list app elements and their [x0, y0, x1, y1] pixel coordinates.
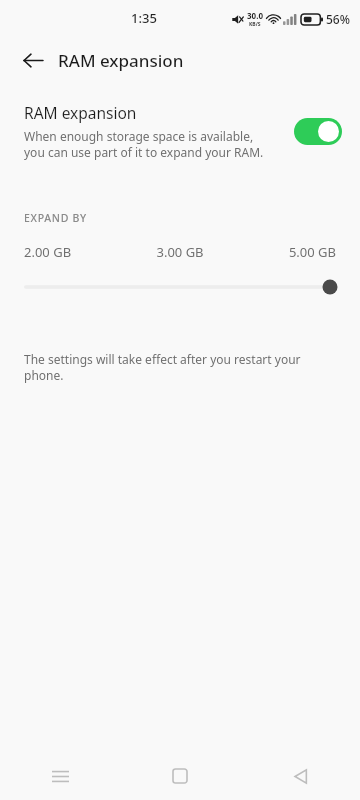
staticText: RAM expansion — [24, 102, 137, 123]
button[interactable]: Back — [10, 38, 56, 82]
button[interactable]: RAM expansion — [0, 98, 360, 165]
button[interactable]: Recent apps — [0, 752, 120, 800]
staticText: 3.00 GB — [128, 243, 232, 261]
staticText: When enough storage space is available, … — [24, 128, 272, 161]
staticText: 30.0 — [247, 10, 263, 21]
button[interactable]: Home — [120, 752, 240, 800]
button[interactable]: RAM expansion toggle — [294, 118, 342, 145]
staticText: RAM expansion — [58, 49, 184, 72]
staticText: 56% — [326, 11, 350, 27]
button[interactable]: Back — [240, 752, 360, 800]
staticText: KB/S — [249, 21, 261, 28]
staticText: 5.00 GB — [232, 243, 336, 261]
button[interactable]: Expand by slider — [0, 275, 360, 299]
staticText: EXPAND BY — [24, 211, 87, 225]
staticText: 1:35 — [131, 9, 157, 27]
staticText: The settings will take effect after you … — [24, 351, 340, 383]
staticText: 2.00 GB — [24, 243, 128, 261]
